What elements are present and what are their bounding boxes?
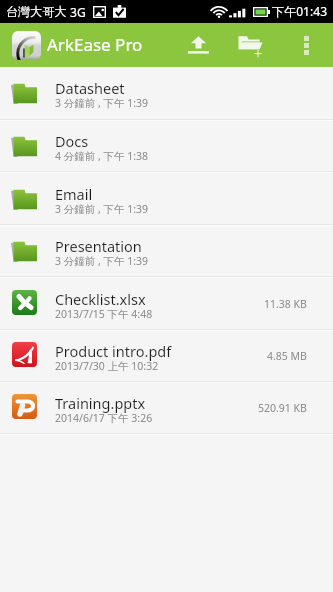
staticText: 2013/7/15 下午 4:48 — [55, 307, 153, 321]
staticText: Training.pptx — [55, 393, 146, 413]
button[interactable]: Checklist.xlsx — [0, 278, 333, 331]
button[interactable]: Docs — [0, 121, 333, 173]
button[interactable]: Email — [0, 173, 333, 226]
staticText: 3 分鐘前 , 下午 1:39 — [55, 254, 149, 268]
button[interactable]: Training.pptx — [0, 383, 333, 435]
staticText: ArkEase Pro — [47, 33, 143, 56]
button[interactable]: Upload — [176, 23, 221, 67]
button[interactable]: Datasheet — [0, 67, 333, 121]
staticText: Presentation — [55, 236, 142, 256]
staticText: Product intro.pdf — [55, 341, 172, 361]
staticText: Email — [55, 184, 93, 204]
staticText: 下午01:43 — [272, 3, 328, 20]
button[interactable]: Presentation — [0, 226, 333, 278]
button[interactable]: New folder — [221, 23, 280, 67]
staticText: 3 分鐘前 , 下午 1:39 — [55, 96, 149, 110]
button[interactable]: Product intro.pdf — [0, 331, 333, 383]
staticText: 11.38 KB — [264, 297, 307, 311]
staticText: 4.85 MB — [267, 349, 307, 363]
staticText: 2014/6/17 下午 3:26 — [55, 411, 153, 425]
staticText: 520.91 KB — [258, 401, 307, 415]
staticText: 3G — [70, 4, 86, 20]
button[interactable]: More options — [280, 23, 333, 67]
staticText: 3 分鐘前 , 下午 1:39 — [55, 202, 149, 216]
staticText: Datasheet — [55, 78, 125, 98]
staticText: 台灣大哥大 — [6, 4, 67, 19]
staticText: 2013/7/30 上午 10:32 — [55, 359, 159, 373]
staticText: Checklist.xlsx — [55, 289, 146, 309]
staticText: 4 分鐘前 , 下午 1:38 — [55, 149, 149, 163]
staticText: Docs — [55, 131, 89, 151]
